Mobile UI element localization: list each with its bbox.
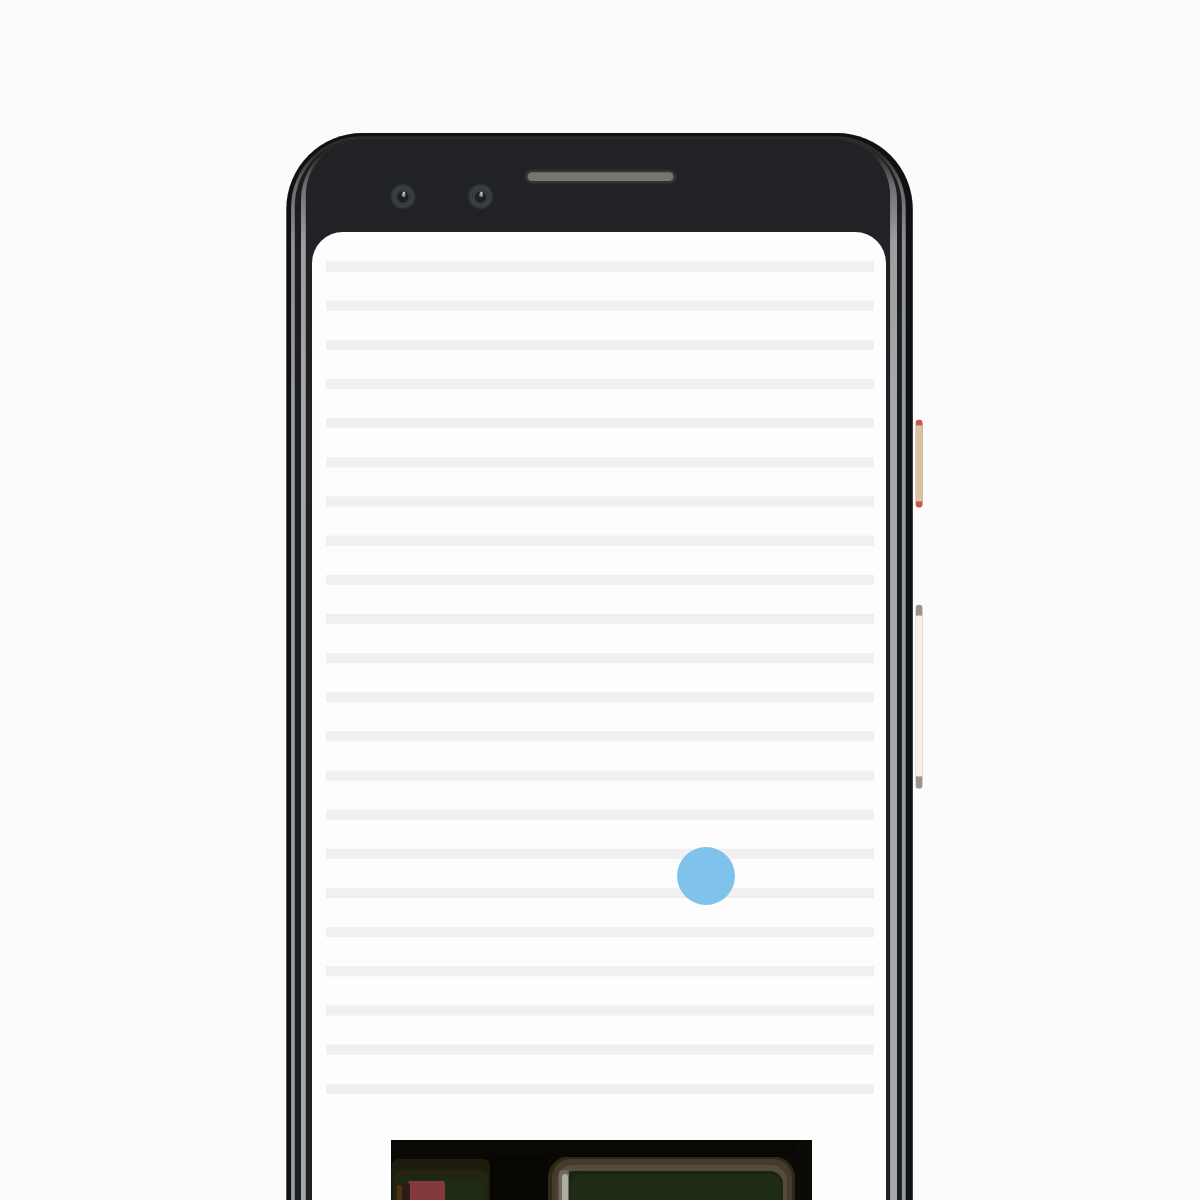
button[interactable] (312, 757, 886, 796)
button[interactable] (312, 718, 886, 757)
button[interactable] (312, 991, 886, 1030)
button[interactable] (312, 484, 886, 523)
button[interactable] (312, 1069, 886, 1108)
button[interactable]: Photo (391, 1140, 812, 1200)
button[interactable] (312, 640, 886, 679)
button[interactable] (312, 328, 886, 367)
button[interactable] (312, 835, 886, 874)
button[interactable] (312, 679, 886, 718)
button[interactable] (312, 289, 886, 328)
button[interactable] (312, 952, 886, 991)
button[interactable]: Create (677, 847, 735, 905)
button[interactable] (312, 523, 886, 562)
button[interactable] (312, 250, 886, 289)
button[interactable] (312, 796, 886, 835)
button[interactable] (312, 601, 886, 640)
button[interactable] (312, 913, 886, 952)
button[interactable] (312, 445, 886, 484)
button[interactable] (312, 874, 886, 913)
button[interactable] (312, 406, 886, 445)
button[interactable] (312, 367, 886, 406)
button[interactable] (312, 562, 886, 601)
button[interactable] (312, 1030, 886, 1069)
